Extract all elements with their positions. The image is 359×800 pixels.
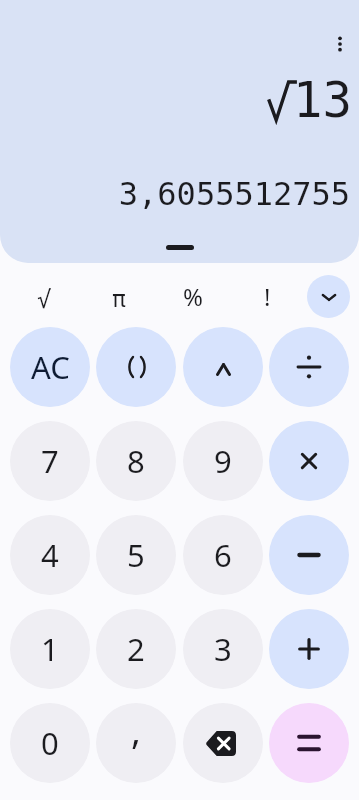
button[interactable]: √ (7, 271, 82, 328)
staticText: AC (31, 346, 70, 388)
button[interactable]: ! (230, 271, 304, 328)
button[interactable]: 2 (96, 609, 176, 689)
staticText: , (131, 704, 141, 754)
staticText: 9 (214, 440, 232, 482)
button[interactable]: Show more functions (307, 275, 350, 318)
button[interactable]: % (156, 271, 230, 328)
staticText: 5 (127, 534, 145, 576)
button[interactable]: 5 (96, 515, 176, 595)
staticText: 6 (214, 534, 232, 576)
button[interactable]: 4 (10, 515, 90, 595)
button[interactable] (269, 327, 349, 407)
button[interactable]: 7 (10, 421, 90, 501)
staticText: 1 (41, 628, 59, 670)
button[interactable]: 0 (10, 703, 90, 783)
staticText: 7 (41, 440, 59, 482)
staticText: % (183, 280, 203, 313)
button[interactable]: AC (10, 327, 90, 407)
button[interactable] (269, 609, 349, 689)
staticText: 2 (127, 628, 145, 670)
button[interactable]: , (96, 703, 176, 783)
button[interactable]: 3 (183, 609, 263, 689)
button[interactable] (269, 515, 349, 595)
button[interactable]: Drag handle (166, 245, 194, 250)
button[interactable] (269, 421, 349, 501)
button[interactable]: 6 (183, 515, 263, 595)
staticText: ! (264, 280, 271, 313)
button[interactable] (96, 327, 176, 407)
button[interactable]: 8 (96, 421, 176, 501)
staticText: √ (37, 286, 52, 314)
staticText: 4 (41, 534, 59, 576)
staticText: 3 (214, 628, 232, 670)
staticText: 3,6055512755 (118, 175, 350, 212)
button[interactable] (183, 327, 263, 407)
button[interactable]: Delete (183, 703, 263, 783)
button[interactable]: More options (322, 26, 358, 62)
staticText: 0 (41, 722, 59, 764)
button[interactable]: 1 (10, 609, 90, 689)
button[interactable]: 9 (183, 421, 263, 501)
staticText: 13 (292, 72, 352, 129)
staticText: π (112, 286, 126, 313)
button[interactable]: π (82, 271, 156, 328)
staticText: 8 (127, 440, 145, 482)
button[interactable]: Equals (269, 703, 349, 783)
